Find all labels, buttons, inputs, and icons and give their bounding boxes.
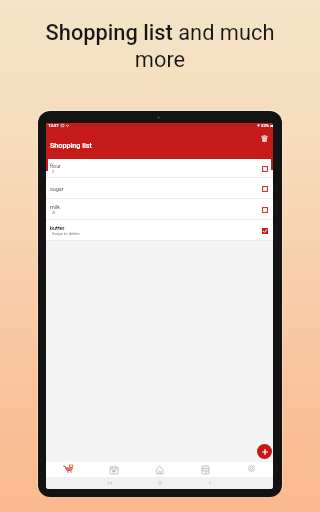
button[interactable]: Home xyxy=(155,478,165,488)
staticText: 4 xyxy=(70,464,72,468)
staticText: butter xyxy=(50,225,65,231)
staticText: 2 xyxy=(52,169,55,174)
staticText: Swipe to delete xyxy=(52,231,80,236)
button[interactable]: Recents xyxy=(105,478,115,488)
staticText: sugar xyxy=(50,186,64,192)
button[interactable]: Settings xyxy=(229,461,273,476)
button[interactable]: Shopping cart xyxy=(46,461,90,476)
button[interactable]: sugar xyxy=(46,178,273,199)
staticText: 2l xyxy=(52,210,56,215)
staticText: milk xyxy=(50,204,61,210)
staticText: Shopping list and much more xyxy=(30,20,290,72)
button[interactable]: Delete list xyxy=(257,131,271,145)
button[interactable]: flour xyxy=(46,159,273,178)
staticText: 32% xyxy=(261,123,269,128)
button[interactable]: milk xyxy=(46,199,273,220)
staticText: flour xyxy=(50,163,61,169)
staticText: 13:37 xyxy=(48,123,59,128)
button[interactable]: Home xyxy=(137,462,182,477)
button[interactable]: Pantry xyxy=(183,462,228,477)
button[interactable]: Add item xyxy=(257,444,272,459)
staticText: Shopping list xyxy=(50,141,92,149)
button[interactable]: Back xyxy=(205,478,215,488)
button[interactable]: butter xyxy=(46,220,273,241)
button[interactable]: Calendar xyxy=(91,462,136,477)
